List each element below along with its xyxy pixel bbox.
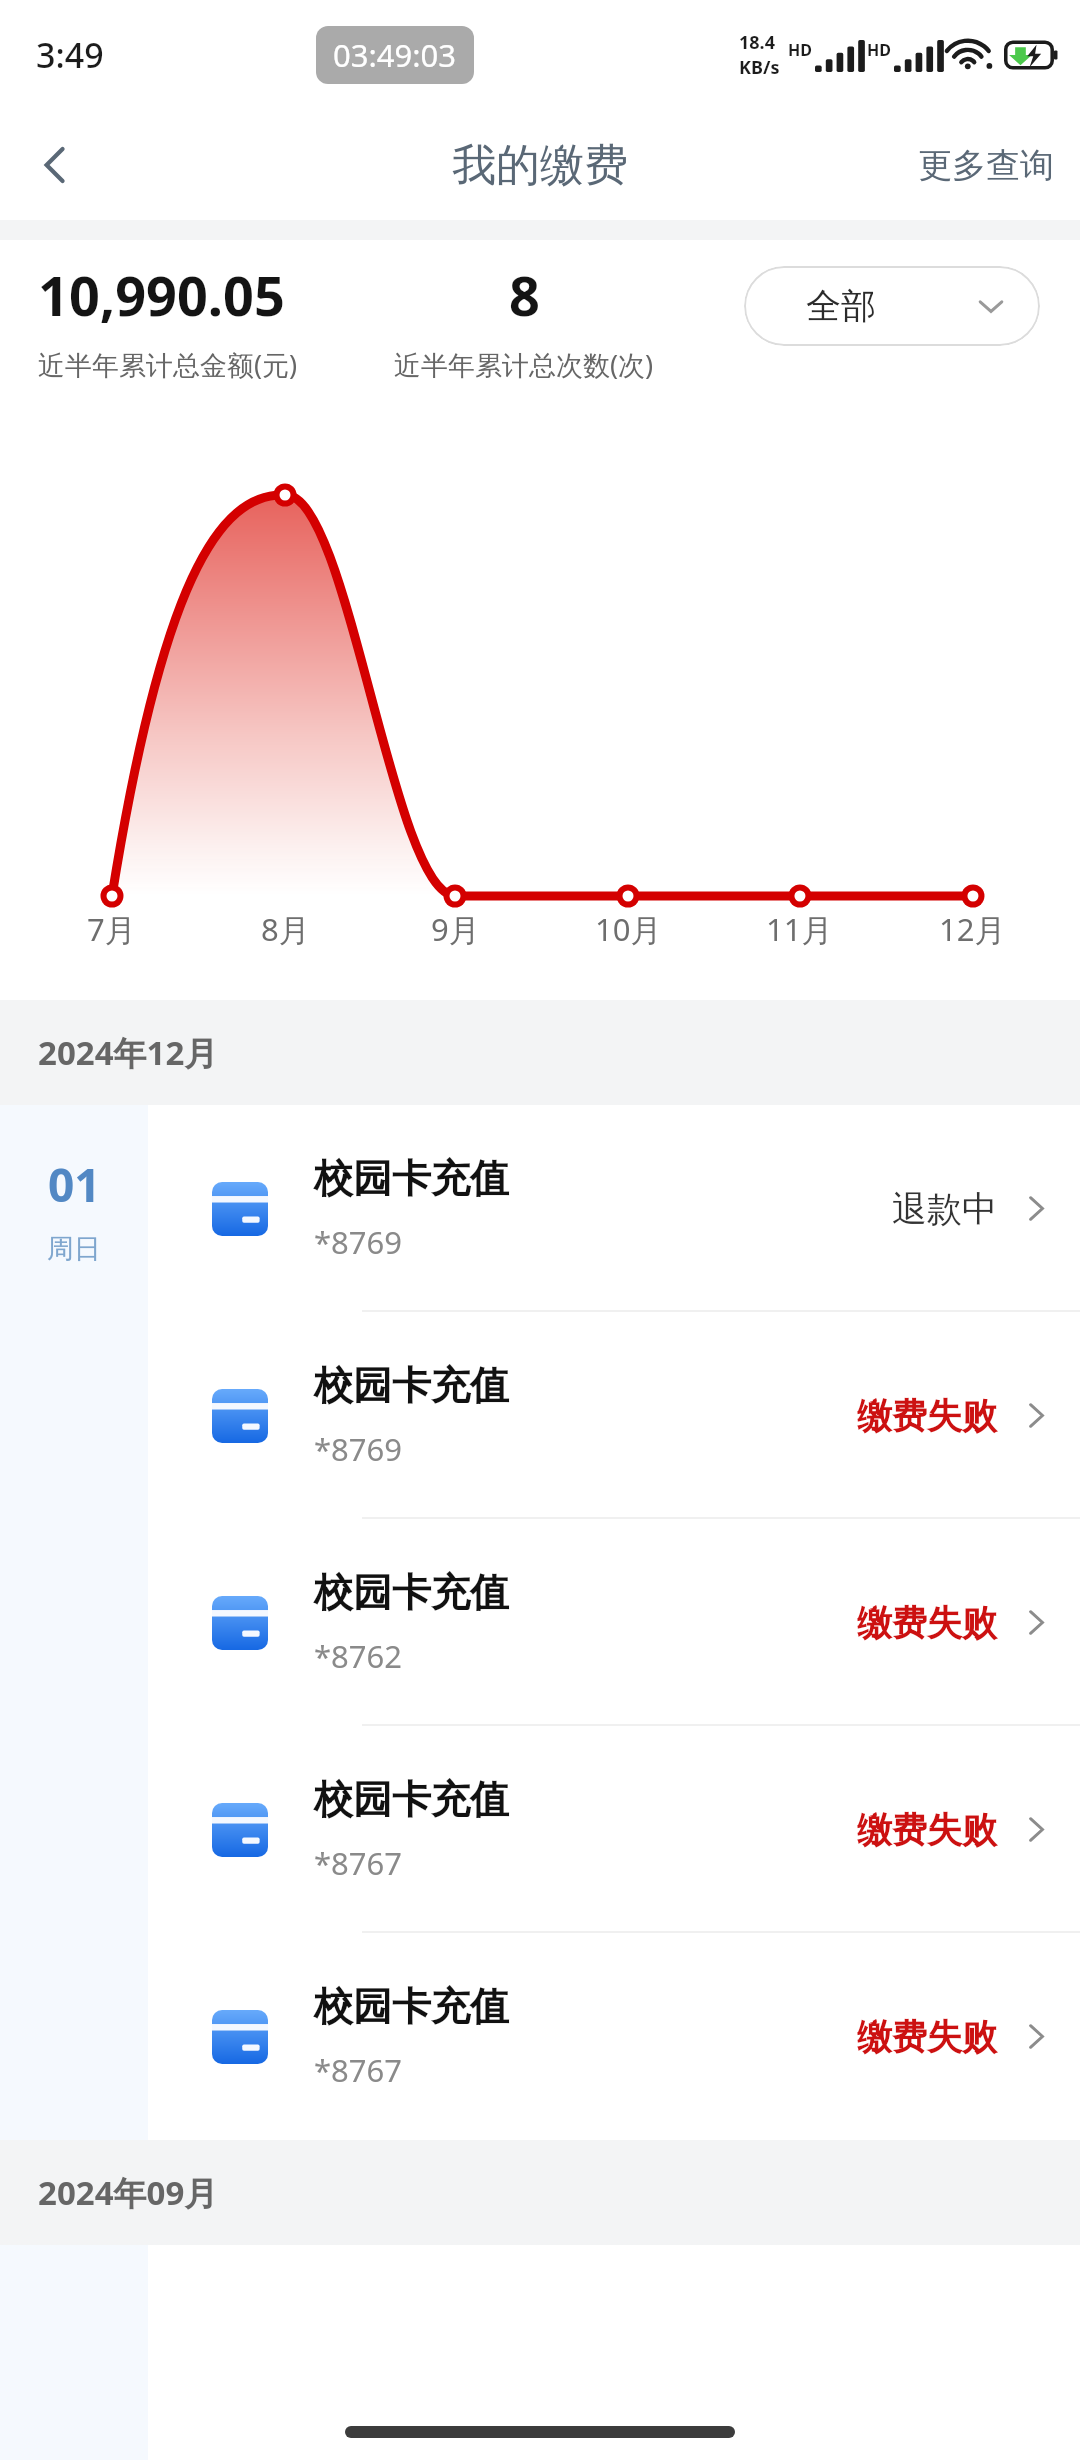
staticText: 校园卡充值 [314, 1568, 509, 1617]
button[interactable]: 校园卡充值 [148, 1312, 1080, 1519]
button[interactable]: 校园卡充值 [148, 1519, 1080, 1726]
staticText: 我的缴费 [452, 138, 628, 193]
staticText: 2024年12月 [38, 1030, 218, 1075]
staticText: 11月 [766, 908, 833, 950]
staticText: 退款中 [892, 1187, 997, 1231]
staticText: 缴费失败 [857, 1808, 997, 1852]
staticText: 校园卡充值 [314, 1775, 509, 1824]
staticText: 校园卡充值 [314, 1154, 509, 1203]
staticText: 校园卡充值 [314, 1361, 509, 1410]
staticText: 03:49:03 [333, 34, 457, 76]
button[interactable]: 全部 [744, 266, 1040, 346]
staticText: 缴费失败 [857, 2015, 997, 2059]
staticText: 12月 [939, 908, 1006, 950]
staticText: 8月 [261, 908, 310, 950]
staticText: 8 [509, 258, 540, 332]
staticText: 7月 [87, 908, 136, 950]
staticText: *8767 [314, 1842, 403, 1884]
staticText: *8769 [314, 1221, 403, 1263]
staticText: *8767 [314, 2049, 403, 2091]
staticText: 18.4 [739, 30, 775, 55]
staticText: 3:49 [36, 32, 104, 78]
button[interactable]: 校园卡充值 [148, 1933, 1080, 2140]
staticText: 10,990.05 [38, 258, 285, 332]
staticText: 缴费失败 [857, 1601, 997, 1645]
staticText: 01 [48, 1153, 101, 1216]
staticText: 9月 [431, 908, 480, 950]
staticText: KB/s [739, 55, 780, 80]
staticText: 更多查询 [918, 144, 1054, 187]
button[interactable]: 更多查询 [892, 120, 1080, 211]
button[interactable]: 返回 [0, 110, 110, 220]
staticText: 10月 [595, 908, 662, 950]
staticText: 全部 [806, 284, 876, 328]
staticText: 2024年09月 [38, 2170, 218, 2215]
staticText: *8769 [314, 1428, 403, 1470]
staticText: 近半年累计总次数(次) [394, 346, 654, 383]
staticText: HD [788, 39, 812, 61]
staticText: *8762 [314, 1635, 403, 1677]
button[interactable]: 校园卡充值 [148, 1726, 1080, 1933]
staticText: 周日 [47, 1232, 101, 1266]
staticText: HD [867, 39, 891, 61]
staticText: 缴费失败 [857, 1394, 997, 1438]
button[interactable]: 校园卡充值 [148, 1105, 1080, 1312]
staticText: 近半年累计总金额(元) [38, 346, 298, 383]
staticText: 校园卡充值 [314, 1982, 509, 2031]
